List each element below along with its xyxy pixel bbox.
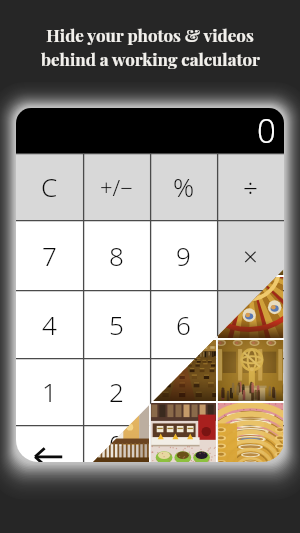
button[interactable]: × bbox=[217, 220, 284, 290]
button[interactable]: +/− bbox=[83, 153, 150, 220]
staticText: 5 bbox=[109, 307, 124, 342]
staticText: 6 bbox=[176, 307, 191, 342]
button[interactable]: 4 bbox=[16, 290, 83, 358]
button[interactable]: 0 bbox=[83, 425, 150, 462]
staticText: 3 bbox=[176, 374, 191, 409]
button[interactable]: Backspace bbox=[16, 425, 83, 462]
staticText: × bbox=[243, 238, 258, 273]
button[interactable]: 8 bbox=[83, 220, 150, 290]
button[interactable]: ÷ bbox=[217, 153, 284, 220]
button[interactable]: . bbox=[150, 425, 217, 462]
button[interactable]: C bbox=[16, 153, 83, 220]
button[interactable]: 9 bbox=[150, 220, 217, 290]
staticText: = bbox=[243, 426, 258, 461]
staticText: 0 bbox=[257, 108, 276, 152]
staticText: 4 bbox=[42, 307, 57, 342]
staticText: 2 bbox=[109, 374, 124, 409]
staticText: 8 bbox=[109, 238, 124, 273]
staticText: − bbox=[243, 307, 258, 342]
staticText: Hide your photos & videos bbox=[46, 24, 254, 47]
staticText: + bbox=[243, 374, 258, 409]
button[interactable]: + bbox=[217, 358, 284, 425]
button[interactable]: 1 bbox=[16, 358, 83, 425]
staticText: . bbox=[180, 426, 187, 461]
staticText: behind a working calculator bbox=[41, 48, 260, 71]
button[interactable]: 5 bbox=[83, 290, 150, 358]
button[interactable]: 2 bbox=[83, 358, 150, 425]
staticText: 1 bbox=[42, 374, 57, 409]
staticText: % bbox=[173, 169, 195, 204]
button[interactable]: % bbox=[150, 153, 217, 220]
button[interactable]: 3 bbox=[150, 358, 217, 425]
staticText: ÷ bbox=[243, 169, 258, 204]
staticText: 0 bbox=[109, 426, 124, 461]
button[interactable]: − bbox=[217, 290, 284, 358]
button[interactable]: = bbox=[217, 425, 284, 462]
button[interactable]: 7 bbox=[16, 220, 83, 290]
button[interactable]: Calculator display showing 0 bbox=[16, 108, 284, 153]
staticText: +/− bbox=[100, 172, 133, 202]
button[interactable]: 6 bbox=[150, 290, 217, 358]
staticText: 9 bbox=[176, 238, 191, 273]
staticText: 7 bbox=[42, 238, 57, 273]
staticText: C bbox=[41, 169, 58, 204]
